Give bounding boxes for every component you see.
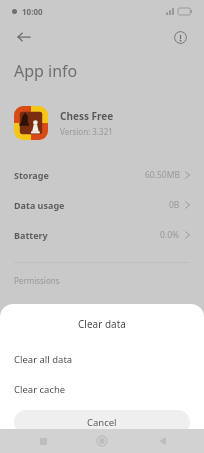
button[interactable]: Storage — [0, 160, 204, 190]
button[interactable]: Recent apps — [26, 429, 60, 453]
staticText: 60.50MB — [145, 169, 180, 181]
staticText: 0.0% — [160, 229, 180, 241]
staticText: 10:00 — [22, 6, 43, 17]
staticText: Battery — [14, 229, 48, 241]
staticText: Clear all data — [14, 353, 73, 366]
button[interactable]: Cancel — [14, 410, 190, 434]
button[interactable]: Clear cache — [0, 378, 204, 400]
staticText: Chess Free — [60, 109, 114, 123]
staticText: 0B — [169, 199, 180, 211]
staticText: App info — [14, 60, 78, 82]
staticText: Clear cache — [14, 383, 66, 396]
button[interactable]: Back — [145, 429, 179, 453]
staticText: Cancel — [87, 416, 117, 429]
button[interactable]: Home — [85, 429, 119, 453]
staticText: Permissions — [14, 275, 60, 286]
button[interactable]: App details — [168, 25, 192, 49]
staticText: Data usage — [14, 199, 65, 211]
button[interactable]: Battery — [0, 220, 204, 250]
button[interactable]: Data usage — [0, 190, 204, 220]
staticText: Version: 3.321 — [60, 126, 113, 137]
button[interactable]: Back — [12, 25, 36, 49]
button[interactable]: Clear all data — [0, 348, 204, 370]
staticText: Clear data — [78, 317, 126, 331]
staticText: Storage — [14, 169, 49, 181]
